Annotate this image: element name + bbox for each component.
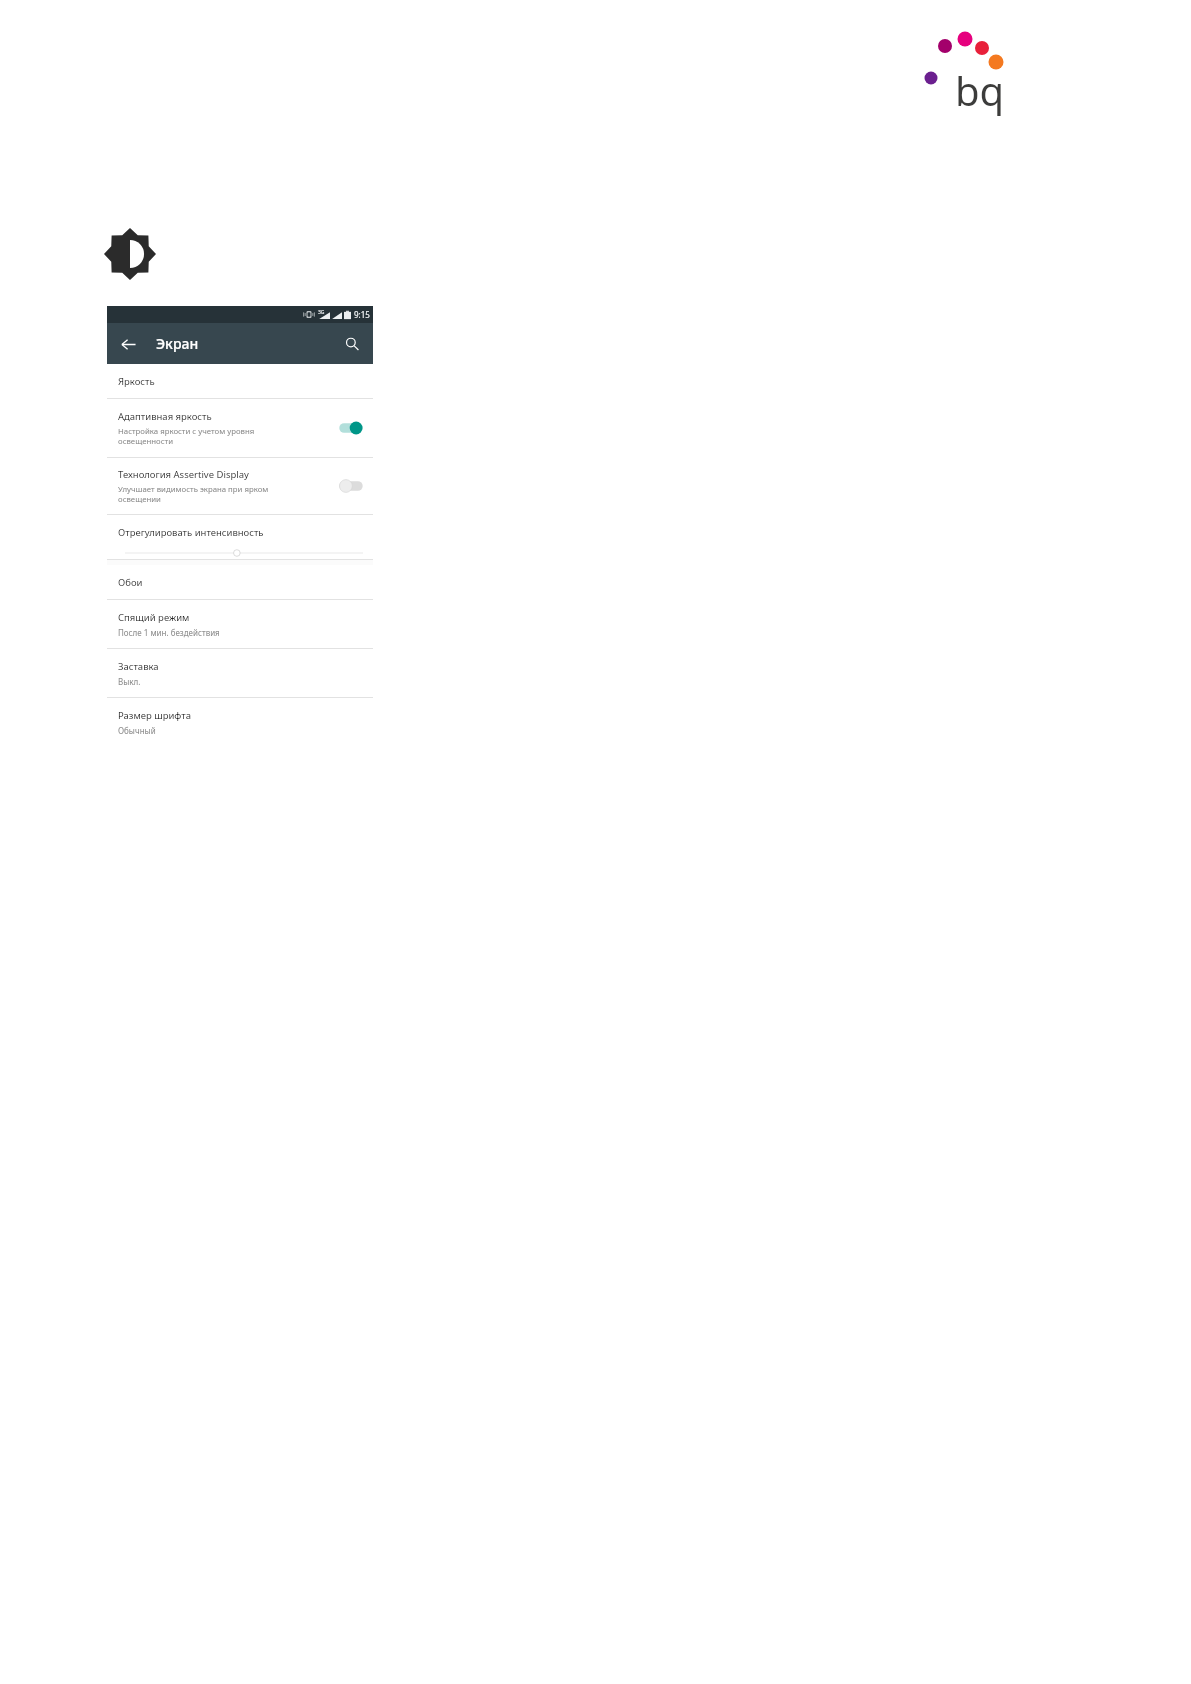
staticText: Улучшает видимость экрана при ярком осве… [118, 484, 269, 504]
staticText: Адаптивная яркость [118, 410, 212, 423]
staticText: bq [955, 63, 1005, 117]
staticText: 3G [318, 309, 325, 316]
button[interactable]: Технология Assertive Display [107, 458, 373, 514]
staticText: Выкл. [118, 676, 141, 687]
button[interactable]: Размер шрифта [107, 698, 373, 746]
button[interactable]: Off [338, 478, 364, 494]
button[interactable]: Search [340, 332, 364, 356]
button[interactable]: Заставка [107, 649, 373, 697]
staticText: Спящий режим [118, 611, 190, 624]
staticText: После 1 мин. бездействия [118, 627, 220, 638]
button[interactable]: Адаптивная яркость [107, 399, 373, 457]
button[interactable]: Яркость [107, 364, 373, 398]
staticText: Обои [118, 576, 143, 589]
button[interactable]: Adaptive brightness on [338, 420, 364, 436]
staticText: Заставка [118, 660, 159, 673]
button[interactable]: Back [116, 332, 140, 356]
staticText: Технология Assertive Display [118, 468, 249, 481]
staticText: Настройка яркости с учетом уровня освеще… [118, 426, 255, 446]
staticText: 9:15 [354, 309, 370, 320]
staticText: Экран [156, 334, 199, 353]
staticText: Обычный [118, 725, 156, 736]
button[interactable]: Спящий режим [107, 600, 373, 648]
staticText: Отрегулировать интенсивность [118, 526, 264, 539]
button[interactable]: Отрегулировать интенсивность [107, 515, 373, 559]
staticText: Яркость [118, 375, 155, 388]
staticText: Размер шрифта [118, 709, 191, 722]
button[interactable]: Обои [107, 565, 373, 599]
